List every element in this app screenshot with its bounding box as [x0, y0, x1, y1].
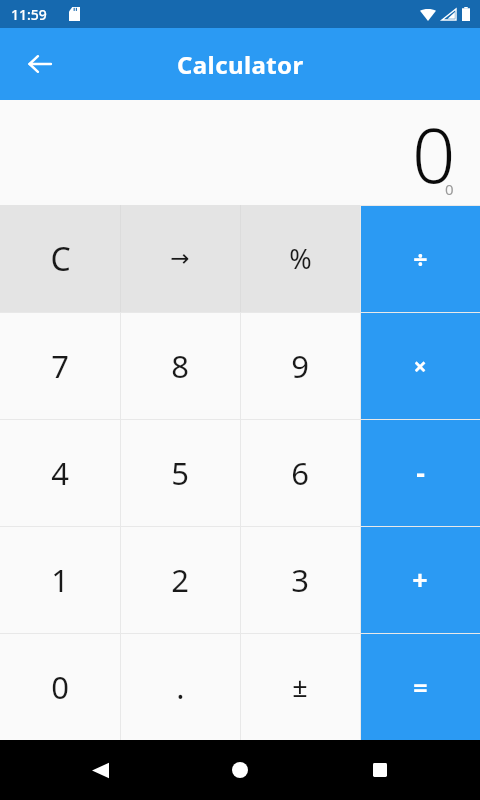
button[interactable]: 6: [240, 419, 360, 526]
staticText: →: [170, 245, 190, 272]
staticText: -: [416, 454, 425, 491]
button[interactable]: ×: [360, 312, 480, 419]
staticText: ±: [292, 668, 308, 705]
button[interactable]: ±: [240, 633, 360, 740]
staticText: 0: [445, 179, 454, 199]
button[interactable]: 4: [0, 419, 120, 526]
staticText: 8: [171, 345, 189, 387]
button[interactable]: 3: [240, 526, 360, 633]
staticText: 11:59: [11, 5, 47, 24]
staticText: +: [412, 561, 428, 598]
button[interactable]: 7: [0, 312, 120, 419]
button[interactable]: 5: [120, 419, 240, 526]
button[interactable]: →: [120, 205, 240, 312]
staticText: ×: [413, 350, 427, 381]
staticText: C: [50, 237, 71, 281]
staticText: 2: [171, 559, 189, 601]
staticText: ÷: [413, 242, 428, 276]
button[interactable]: %: [240, 205, 360, 312]
button[interactable]: Home: [216, 746, 264, 794]
button[interactable]: 2: [120, 526, 240, 633]
staticText: 3: [291, 559, 309, 601]
button[interactable]: Recent apps: [356, 746, 404, 794]
staticText: Calculator: [177, 48, 304, 81]
staticText: 7: [51, 345, 69, 387]
staticText: 9: [291, 345, 309, 387]
button[interactable]: =: [360, 633, 480, 740]
button[interactable]: C: [0, 205, 120, 312]
button[interactable]: .: [120, 633, 240, 740]
button[interactable]: 8: [120, 312, 240, 419]
staticText: 4: [51, 452, 69, 494]
staticText: 5: [171, 452, 189, 494]
button[interactable]: +: [360, 526, 480, 633]
button[interactable]: 0: [0, 633, 120, 740]
button[interactable]: 1: [0, 526, 120, 633]
staticText: 6: [291, 452, 309, 494]
button[interactable]: -: [360, 419, 480, 526]
staticText: 1: [51, 559, 69, 601]
staticText: 0: [51, 666, 69, 708]
button[interactable]: ÷: [360, 205, 480, 312]
staticText: 0: [412, 102, 456, 205]
button[interactable]: Back: [14, 38, 66, 90]
button[interactable]: 9: [240, 312, 360, 419]
staticText: .: [176, 666, 185, 708]
staticText: %: [289, 240, 312, 277]
staticText: =: [413, 670, 428, 704]
button[interactable]: Back: [76, 746, 124, 794]
